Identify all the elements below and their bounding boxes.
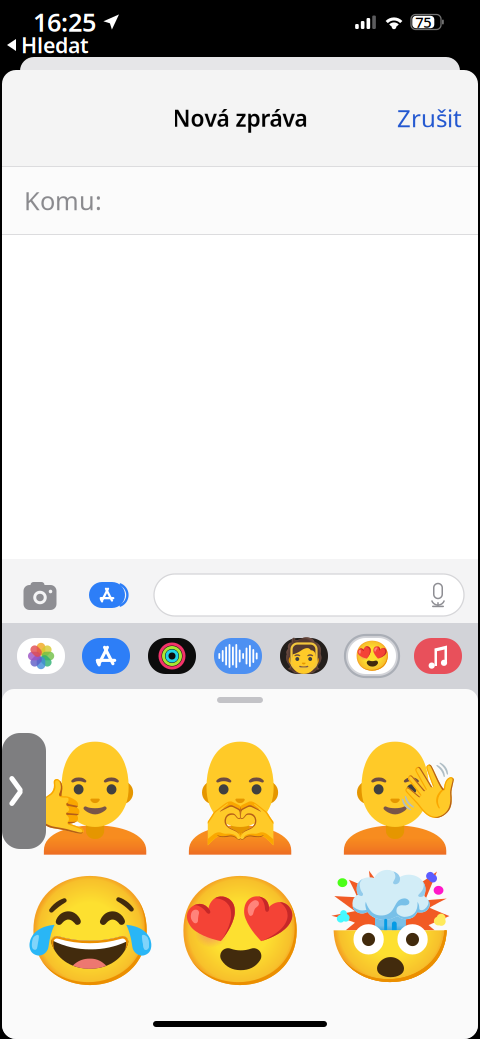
staticText: 🧑‍🦲 xyxy=(327,732,463,857)
button[interactable]: Hledat xyxy=(0,32,99,58)
button[interactable]: Message field xyxy=(154,574,464,616)
button[interactable]: App Store xyxy=(82,638,130,674)
button[interactable]: Mind blown sticker xyxy=(315,877,465,981)
button[interactable]: Expand stickers xyxy=(2,733,30,849)
staticText: 16:25 xyxy=(33,5,96,39)
button[interactable]: Photos xyxy=(17,638,65,674)
button[interactable]: Music xyxy=(414,638,462,674)
staticText: 🧑‍🦲 xyxy=(27,732,163,857)
button[interactable]: Audio Messages xyxy=(214,638,262,674)
button[interactable]: Apps xyxy=(83,573,131,617)
staticText: 🤙 xyxy=(26,776,92,837)
button[interactable]: Heart hands sticker xyxy=(165,732,315,858)
button[interactable]: Zrušit xyxy=(381,90,478,146)
staticText: 👋 xyxy=(396,760,462,821)
staticText: 😍 xyxy=(173,871,306,993)
button[interactable]: Fitness xyxy=(148,638,196,674)
staticText: 75 xyxy=(415,12,431,32)
staticText: 😂 xyxy=(23,871,156,993)
staticText: Komu: xyxy=(24,184,102,217)
staticText: Hledat xyxy=(21,31,89,59)
staticText: 🤯 xyxy=(323,868,456,990)
button[interactable]: Stickers xyxy=(345,635,399,677)
staticText: Nová zpráva xyxy=(172,103,307,133)
button[interactable]: Memoji xyxy=(280,638,328,674)
staticText: 🫶 xyxy=(203,791,276,858)
button[interactable]: Wave sticker xyxy=(320,732,470,858)
button[interactable]: Heart eyes sticker xyxy=(165,880,315,984)
button[interactable]: Camera xyxy=(18,573,62,617)
button[interactable]: Laughing sticker xyxy=(15,880,165,984)
staticText: 🧑‍🦲 xyxy=(172,732,308,857)
staticText: 😍 xyxy=(353,639,390,673)
button[interactable]: Call me sticker xyxy=(20,732,170,858)
staticText: Zrušit xyxy=(397,102,462,134)
staticText: 🧑 xyxy=(283,637,325,675)
